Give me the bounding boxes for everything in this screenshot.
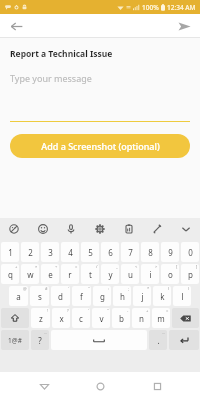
button[interactable]: . bbox=[149, 330, 167, 350]
button[interactable]: 1 bbox=[1, 242, 19, 262]
staticText: ( bbox=[168, 286, 170, 291]
button[interactable]: o bbox=[161, 264, 179, 284]
button[interactable]: q bbox=[1, 264, 19, 284]
button[interactable]: Keyboard settings bbox=[91, 220, 109, 238]
staticText: . bbox=[157, 335, 160, 346]
staticText: - bbox=[127, 308, 129, 313]
staticText: × bbox=[35, 264, 38, 269]
staticText: l bbox=[181, 291, 184, 302]
staticText: = bbox=[75, 264, 78, 269]
staticText: 5 bbox=[88, 247, 93, 258]
button[interactable]: 9 bbox=[161, 242, 179, 262]
staticText: ... bbox=[44, 330, 48, 335]
button[interactable]: 5 bbox=[81, 242, 99, 262]
button[interactable]: Add a Screenshot (optional) bbox=[10, 134, 190, 158]
button[interactable]: Recent apps bbox=[144, 373, 170, 399]
staticText: a bbox=[16, 291, 21, 302]
staticText: 100% bbox=[142, 3, 159, 12]
button[interactable]: Back bbox=[31, 373, 57, 399]
button[interactable]: 7 bbox=[121, 242, 139, 262]
staticText: p bbox=[188, 269, 193, 280]
staticText: + bbox=[146, 308, 149, 313]
button[interactable]: 8 bbox=[141, 242, 159, 262]
button[interactable]: Enter bbox=[169, 330, 199, 350]
button[interactable]: 6 bbox=[101, 242, 119, 262]
button[interactable]: e bbox=[41, 264, 59, 284]
button[interactable]: k bbox=[153, 286, 171, 306]
button[interactable]: 2 bbox=[21, 242, 39, 262]
button[interactable]: Collapse toolbar bbox=[177, 220, 195, 238]
staticText: 7 bbox=[128, 247, 133, 258]
button[interactable]: b bbox=[112, 308, 130, 328]
button[interactable]: z bbox=[31, 308, 50, 328]
staticText: t bbox=[89, 269, 92, 280]
staticText: ! bbox=[47, 308, 49, 313]
staticText: * bbox=[147, 286, 150, 291]
staticText: ? bbox=[67, 308, 69, 313]
staticText: d bbox=[58, 291, 63, 302]
button[interactable]: t bbox=[81, 264, 99, 284]
button[interactable]: Space bbox=[51, 330, 147, 350]
staticText: # bbox=[45, 286, 48, 291]
button[interactable]: h bbox=[113, 286, 131, 306]
staticText: s bbox=[38, 291, 42, 302]
button[interactable]: Back bbox=[5, 15, 27, 37]
staticText: ÷ bbox=[55, 264, 58, 269]
button[interactable]: Type your message bbox=[10, 72, 92, 84]
button[interactable]: Voice input bbox=[62, 220, 80, 238]
staticText: 9 bbox=[168, 247, 173, 258]
staticText: e bbox=[48, 269, 53, 280]
staticText: 4 bbox=[68, 247, 73, 258]
staticText: @ bbox=[23, 286, 27, 291]
button[interactable]: Home bbox=[87, 373, 113, 399]
button[interactable]: c bbox=[72, 308, 90, 328]
button[interactable]: a bbox=[9, 286, 28, 306]
staticText: x bbox=[59, 313, 64, 324]
button[interactable]: Emoji bbox=[34, 220, 52, 238]
staticText: 1 bbox=[8, 247, 13, 258]
staticText: k bbox=[160, 291, 165, 302]
button[interactable]: Send bbox=[173, 15, 195, 37]
staticText: i bbox=[149, 269, 152, 280]
button[interactable]: g bbox=[93, 286, 111, 306]
button[interactable]: v bbox=[92, 308, 110, 328]
staticText: ? bbox=[38, 335, 42, 346]
button[interactable]: n bbox=[132, 308, 150, 328]
button[interactable]: 4 bbox=[61, 242, 79, 262]
button[interactable]: u bbox=[121, 264, 139, 284]
button[interactable]: 3 bbox=[41, 242, 59, 262]
button[interactable]: r bbox=[61, 264, 79, 284]
staticText: u bbox=[128, 269, 133, 280]
button[interactable]: s bbox=[30, 286, 49, 306]
staticText: > bbox=[155, 264, 158, 269]
button[interactable]: j bbox=[133, 286, 151, 306]
staticText: 3 bbox=[48, 247, 53, 258]
button[interactable]: w bbox=[21, 264, 39, 284]
button[interactable]: m bbox=[152, 308, 170, 328]
button[interactable]: ? bbox=[31, 330, 49, 350]
button[interactable]: i bbox=[141, 264, 159, 284]
staticText: j bbox=[141, 291, 144, 302]
button[interactable]: Handwriting bbox=[148, 220, 166, 238]
staticText: Report a Technical Issue bbox=[10, 48, 113, 60]
button[interactable]: 0 bbox=[181, 242, 199, 262]
staticText: ... bbox=[162, 330, 166, 335]
button[interactable]: f bbox=[72, 286, 91, 306]
staticText: / bbox=[96, 264, 98, 269]
staticText: Add a Screenshot (optional) bbox=[41, 140, 160, 152]
staticText: [ bbox=[176, 264, 178, 269]
staticText: " bbox=[107, 308, 109, 313]
button[interactable]: Clipboard bbox=[120, 220, 138, 238]
button[interactable]: p bbox=[181, 264, 199, 284]
button[interactable]: Shift bbox=[1, 308, 29, 328]
staticText: f bbox=[80, 291, 83, 302]
button[interactable]: d bbox=[51, 286, 70, 306]
button[interactable]: l bbox=[173, 286, 191, 306]
staticText: _ bbox=[116, 264, 118, 269]
button[interactable]: x bbox=[52, 308, 70, 328]
button[interactable]: 1@# bbox=[1, 330, 29, 350]
button[interactable]: y bbox=[101, 264, 119, 284]
button[interactable]: Backspace bbox=[172, 308, 199, 328]
button[interactable]: Stickers bbox=[5, 220, 23, 238]
staticText: = bbox=[166, 308, 169, 313]
